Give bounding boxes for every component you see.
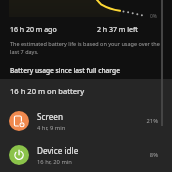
staticText: 16 h 20 m ago [10,25,57,35]
staticText: 0% [150,13,158,20]
staticText: 4 hr, 9 min [37,124,66,132]
staticText: Device idle [37,145,79,156]
staticText: The estimated battery life is based on y… [10,40,165,56]
button[interactable]: Screen [0,103,172,135]
staticText: Battery usage since last full charge [10,66,120,75]
staticText: 21% [140,117,158,125]
button[interactable]: Device idle [0,137,172,169]
staticText: 8% [140,151,158,159]
staticText: 16 hr, 20 min [37,158,72,166]
staticText: Screen [37,111,63,122]
staticText: 16 h 20 m on battery [10,86,85,96]
staticText: 2 h 37 m left [97,25,138,35]
